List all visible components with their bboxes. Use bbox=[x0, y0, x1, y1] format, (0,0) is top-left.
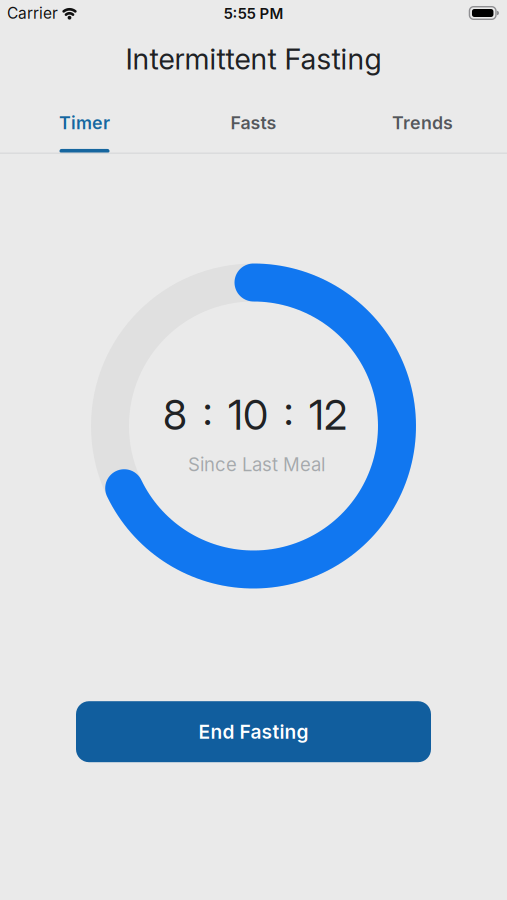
staticText: Carrier bbox=[7, 4, 58, 23]
button[interactable]: End Fasting bbox=[76, 701, 431, 762]
staticText: Since Last Meal bbox=[188, 453, 325, 476]
button[interactable]: Timer bbox=[0, 100, 169, 153]
staticText: Timer bbox=[59, 112, 110, 134]
button[interactable]: Fasts bbox=[169, 100, 338, 153]
staticText: 8 : 10 : 12 bbox=[163, 390, 347, 440]
staticText: Fasts bbox=[230, 112, 276, 134]
staticText: Intermittent Fasting bbox=[125, 41, 381, 77]
staticText: 5:55 PM bbox=[223, 4, 283, 23]
button[interactable]: Trends bbox=[338, 100, 507, 153]
staticText: End Fasting bbox=[198, 720, 308, 743]
staticText: Trends bbox=[392, 112, 453, 134]
